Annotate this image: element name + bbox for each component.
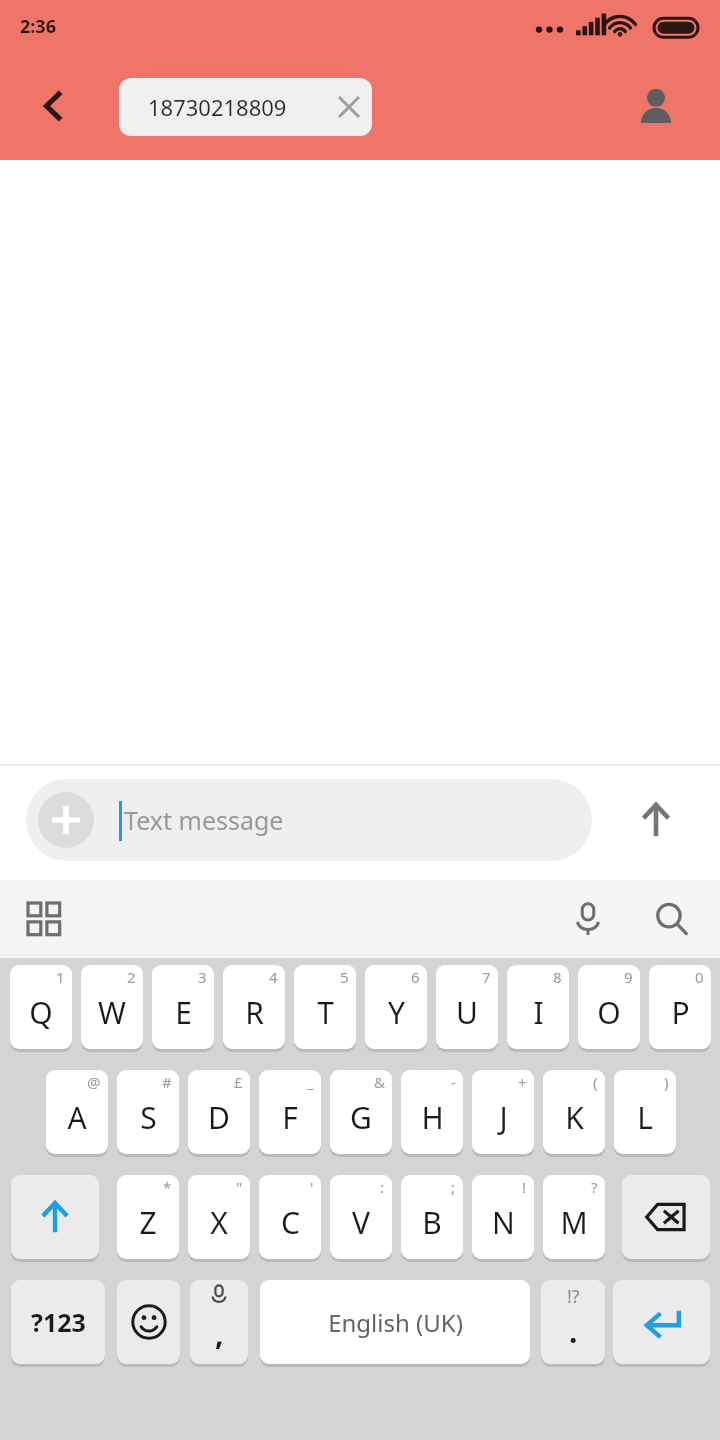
staticText: C — [281, 1202, 300, 1243]
staticText: W — [98, 992, 126, 1033]
staticText: 2 — [127, 967, 136, 987]
staticText: + — [518, 1072, 527, 1092]
staticText: ; — [451, 1177, 456, 1197]
staticText: 8 — [553, 967, 562, 987]
staticText: V — [352, 1202, 370, 1243]
staticText: K — [565, 1097, 584, 1138]
button[interactable]: & — [330, 1070, 392, 1154]
staticText: B — [422, 1202, 442, 1243]
button[interactable]: 6 — [365, 965, 427, 1049]
staticText: £ — [234, 1072, 243, 1092]
button[interactable]: ; — [401, 1175, 463, 1259]
staticText: O — [597, 992, 621, 1033]
button[interactable]: Enter — [613, 1280, 710, 1364]
staticText: ) — [664, 1072, 669, 1092]
button[interactable]: Attach — [26, 779, 592, 861]
button[interactable]: £ — [188, 1070, 250, 1154]
button[interactable]: # — [117, 1070, 179, 1154]
staticText: J — [499, 1097, 508, 1138]
staticText: S — [140, 1097, 157, 1138]
staticText: , — [215, 1313, 224, 1354]
button[interactable]: Shift — [11, 1175, 99, 1259]
button[interactable]: 3 — [152, 965, 214, 1049]
staticText: 2:36 — [20, 14, 56, 39]
button[interactable]: 9 — [578, 965, 640, 1049]
button[interactable]: Voice input — [558, 889, 618, 949]
staticText: # — [162, 1072, 172, 1092]
button[interactable]: 2 — [81, 965, 143, 1049]
staticText: & — [374, 1072, 385, 1092]
staticText: U — [456, 992, 478, 1033]
staticText: E — [175, 992, 192, 1033]
staticText: " — [236, 1177, 243, 1197]
button[interactable]: 7 — [436, 965, 498, 1049]
staticText: Text message — [124, 803, 284, 837]
button[interactable]: Emoji — [117, 1280, 180, 1364]
staticText: X — [210, 1202, 228, 1243]
staticText: ! — [522, 1177, 527, 1197]
button[interactable]: ( — [543, 1070, 605, 1154]
staticText: 5 — [340, 967, 349, 987]
button[interactable]: 5 — [294, 965, 356, 1049]
button[interactable]: Contact — [620, 71, 692, 143]
staticText: 0 — [695, 967, 704, 987]
staticText: @ — [87, 1072, 101, 1092]
staticText: D — [208, 1097, 230, 1138]
button[interactable]: Attach — [38, 792, 94, 848]
staticText: T — [317, 992, 334, 1033]
button[interactable]: Clear recipient — [326, 84, 372, 130]
button[interactable]: ' — [259, 1175, 321, 1259]
staticText: Z — [139, 1202, 157, 1243]
button[interactable]: Send — [612, 779, 700, 861]
button[interactable]: @ — [46, 1070, 108, 1154]
button[interactable]: ! — [472, 1175, 534, 1259]
staticText: P — [671, 992, 690, 1033]
staticText: 3 — [198, 967, 207, 987]
staticText: R — [245, 992, 264, 1033]
button[interactable]: 8 — [507, 965, 569, 1049]
button[interactable]: Period — [541, 1280, 605, 1364]
button[interactable]: ) — [614, 1070, 676, 1154]
button[interactable]: Search — [642, 889, 702, 949]
staticText: ? — [591, 1177, 598, 1197]
staticText: _ — [307, 1072, 314, 1092]
staticText: . — [569, 1311, 578, 1352]
staticText: Y — [388, 992, 405, 1033]
button[interactable]: ? — [543, 1175, 605, 1259]
button[interactable]: 18730218809 — [119, 78, 372, 136]
staticText: L — [637, 1097, 653, 1138]
staticText: 4 — [269, 967, 278, 987]
staticText: 1 — [56, 967, 65, 987]
button[interactable]: : — [330, 1175, 392, 1259]
staticText: G — [350, 1097, 372, 1138]
staticText: M — [560, 1202, 588, 1243]
staticText: N — [492, 1202, 515, 1243]
staticText: 6 — [411, 967, 420, 987]
staticText: H — [421, 1097, 444, 1138]
button[interactable]: Back — [18, 71, 88, 141]
staticText: ' — [310, 1177, 314, 1197]
button[interactable]: _ — [259, 1070, 321, 1154]
button[interactable]: Comma and voice — [190, 1280, 248, 1364]
button[interactable]: ?123 — [11, 1280, 105, 1364]
staticText: A — [67, 1097, 87, 1138]
staticText: 7 — [482, 967, 491, 987]
staticText: : — [380, 1177, 385, 1197]
staticText: ( — [593, 1072, 598, 1092]
staticText: !? — [567, 1284, 580, 1309]
staticText: 18730218809 — [148, 92, 287, 122]
staticText: * — [163, 1177, 172, 1197]
staticText: F — [282, 1097, 298, 1138]
button[interactable]: 1 — [10, 965, 72, 1049]
button[interactable]: " — [188, 1175, 250, 1259]
button[interactable]: English (UK) — [260, 1280, 530, 1364]
button[interactable]: 4 — [223, 965, 285, 1049]
button[interactable]: * — [117, 1175, 179, 1259]
button[interactable]: - — [401, 1070, 463, 1154]
staticText: I — [533, 992, 544, 1033]
button[interactable]: + — [472, 1070, 534, 1154]
staticText: ?123 — [31, 1305, 86, 1339]
button[interactable]: Keyboard layouts — [14, 889, 74, 949]
button[interactable]: 0 — [649, 965, 711, 1049]
button[interactable]: Backspace — [622, 1175, 710, 1259]
